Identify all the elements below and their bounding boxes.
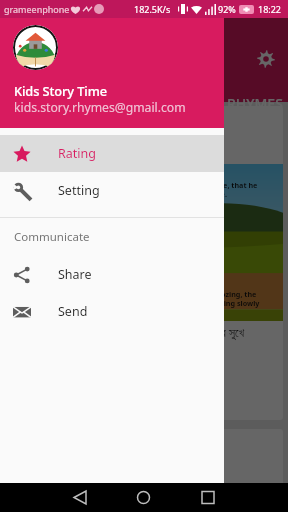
staticText: 18:22 bbox=[258, 3, 282, 15]
staticText: grameenphone bbox=[4, 3, 70, 15]
staticText: While the over-confident Hare was taking… bbox=[13, 289, 260, 317]
staticText: One day a Hare was boasting of his speed… bbox=[13, 180, 258, 199]
button[interactable]: Rating bbox=[0, 135, 224, 172]
staticText: Rating bbox=[58, 145, 96, 162]
button[interactable]: Settings bbox=[257, 50, 275, 68]
staticText: Communicate bbox=[14, 229, 90, 245]
button[interactable]: Back bbox=[56, 483, 104, 512]
staticText: 182.5K/s bbox=[134, 3, 171, 15]
staticText: Share bbox=[58, 266, 92, 283]
button[interactable]: RHYMES bbox=[227, 94, 283, 113]
staticText: RHYMES bbox=[227, 94, 283, 113]
button[interactable]: Home bbox=[120, 483, 168, 512]
staticText: Setting bbox=[58, 182, 100, 199]
button[interactable]: One day a Hare was boasting of his speed… bbox=[5, 106, 283, 420]
staticText: kids.story.rhymes@gmail.com bbox=[14, 99, 186, 116]
staticText: Kids Story Time bbox=[14, 82, 107, 99]
staticText: 92% bbox=[218, 3, 236, 15]
staticText: Send bbox=[58, 303, 88, 320]
button[interactable]: Share bbox=[0, 256, 224, 293]
button[interactable]: Setting bbox=[0, 172, 224, 209]
button[interactable]: Recent apps bbox=[184, 483, 232, 512]
staticText: একটি ঘন বনের মাঝে একটি খরগোশ আর একটি কচ্… bbox=[15, 324, 245, 400]
button[interactable] bbox=[5, 429, 283, 512]
button[interactable]: Send bbox=[0, 293, 224, 330]
